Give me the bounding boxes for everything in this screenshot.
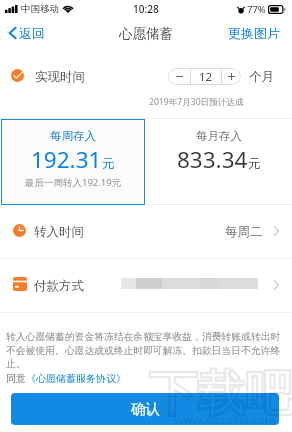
staticText: 下载吧 [149, 364, 292, 424]
staticText: 个月 [249, 69, 274, 85]
staticText: 最后一周转入192.19元 [25, 176, 122, 189]
button[interactable]: 每周存入 [1, 119, 145, 205]
button[interactable]: 付款方式 [0, 259, 292, 312]
button[interactable]: 每月存入 [145, 119, 292, 205]
staticText: 同意《心愿储蓄服务协议》 [6, 372, 126, 385]
staticText: 转入心愿储蓄的资金将冻结在余额宝享收益，消费转账或转出时不会被使用。心愿达成或终… [6, 331, 286, 370]
staticText: 实现时间 [35, 69, 85, 85]
staticText: www.xiazaiba.com [174, 412, 277, 428]
staticText: 返回 [19, 25, 45, 41]
staticText: 12 [199, 69, 213, 85]
staticText: 确认 [131, 400, 160, 418]
staticText: 每月存入 [196, 129, 242, 143]
staticText: 10:28 [133, 2, 159, 16]
staticText: 元 [248, 156, 261, 172]
button[interactable]: 同意《心愿储蓄服务协议》 [6, 372, 126, 385]
staticText: 中国移动 [21, 3, 59, 15]
staticText: 833.34 [177, 144, 248, 175]
staticText: 77% [247, 3, 266, 16]
staticText: 2019年7月30日预计达成 [149, 96, 244, 108]
button[interactable]: 更换图片 [220, 20, 292, 46]
button[interactable]: 转入时间 [0, 205, 292, 258]
staticText: 每周二 [225, 224, 263, 240]
staticText: 元 [102, 156, 115, 172]
staticText: 每周存入 [50, 129, 96, 143]
staticText: 192.31 [31, 144, 102, 175]
button[interactable]: Increase months [222, 68, 241, 85]
staticText: 付款方式 [34, 278, 84, 294]
button[interactable]: 返回 [0, 21, 53, 45]
staticText: 转入时间 [34, 224, 84, 240]
staticText: 心愿储蓄 [119, 25, 173, 42]
button[interactable]: Decrease months [168, 68, 190, 85]
button[interactable]: 确认 [11, 393, 279, 425]
